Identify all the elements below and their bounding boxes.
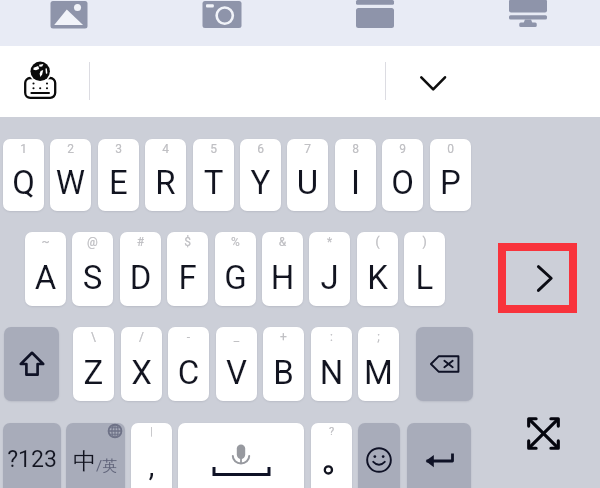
staticText: _: [216, 330, 257, 344]
button[interactable]: |: [131, 423, 172, 488]
button[interactable]: &: [262, 232, 303, 306]
staticText: /英: [96, 457, 118, 476]
staticText: ,: [131, 448, 172, 483]
button[interactable]: Expand keyboard: [521, 411, 566, 456]
button[interactable]: Screen mirror: [501, 0, 555, 46]
staticText: H: [262, 258, 303, 297]
button[interactable]: *: [309, 232, 350, 306]
button[interactable]: ?: [311, 423, 352, 488]
staticText: V: [216, 353, 257, 392]
staticText: X: [121, 353, 162, 392]
button[interactable]: Gallery: [42, 0, 96, 46]
staticText: 1: [3, 142, 44, 156]
staticText: 8: [335, 142, 376, 156]
button[interactable]: 5: [193, 139, 234, 211]
staticText: ~: [25, 235, 66, 249]
button[interactable]: Next: [506, 251, 569, 305]
staticText: K: [357, 258, 398, 297]
button[interactable]: 1: [3, 139, 44, 211]
staticText: P: [430, 163, 471, 202]
staticText: /: [121, 330, 162, 344]
button[interactable]: -: [168, 327, 209, 401]
button[interactable]: Emoji: [358, 423, 400, 488]
staticText: Z: [73, 353, 114, 392]
staticText: :: [311, 330, 352, 344]
staticText: \: [73, 330, 114, 344]
button[interactable]: _: [216, 327, 257, 401]
button[interactable]: \: [73, 327, 114, 401]
staticText: 3: [98, 142, 139, 156]
button[interactable]: 8: [335, 139, 376, 211]
staticText: R: [145, 163, 186, 202]
button[interactable]: :: [311, 327, 352, 401]
button[interactable]: 2: [50, 139, 91, 211]
staticText: C: [168, 353, 209, 392]
button[interactable]: Backspace: [416, 327, 473, 401]
button[interactable]: Enter: [407, 423, 471, 488]
staticText: 中: [73, 447, 96, 476]
staticText: A: [25, 258, 66, 297]
button[interactable]: 7: [287, 139, 328, 211]
staticText: E: [98, 163, 139, 202]
staticText: M: [358, 353, 399, 392]
staticText: +: [263, 330, 304, 344]
staticText: $: [167, 235, 208, 249]
staticText: 9: [382, 142, 423, 156]
staticText: ?: [311, 425, 352, 438]
staticText: Q: [3, 163, 44, 202]
staticText: ): [404, 235, 445, 249]
button[interactable]: 0: [430, 139, 471, 211]
button[interactable]: /: [121, 327, 162, 401]
staticText: ?123: [3, 446, 61, 473]
button[interactable]: Switch language: [12, 54, 68, 108]
staticText: |: [131, 426, 172, 438]
staticText: B: [263, 353, 304, 392]
button[interactable]: +: [263, 327, 304, 401]
staticText: &: [262, 235, 303, 249]
button[interactable]: Camera: [195, 0, 249, 46]
staticText: D: [120, 258, 161, 297]
button[interactable]: 9: [382, 139, 423, 211]
staticText: N: [311, 353, 352, 392]
button[interactable]: ): [404, 232, 445, 306]
staticText: @: [72, 235, 113, 249]
button[interactable]: 6: [240, 139, 281, 211]
staticText: S: [72, 258, 113, 297]
staticText: (: [357, 235, 398, 249]
staticText: G: [215, 258, 256, 297]
button[interactable]: Collapse toolbar: [409, 55, 457, 103]
staticText: 6: [240, 142, 281, 156]
button[interactable]: (: [357, 232, 398, 306]
staticText: W: [50, 163, 91, 202]
staticText: 0: [430, 142, 471, 156]
staticText: 5: [193, 142, 234, 156]
button[interactable]: Space: [178, 423, 304, 488]
button[interactable]: 4: [145, 139, 186, 211]
staticText: *: [309, 235, 350, 249]
button[interactable]: %: [215, 232, 256, 306]
staticText: J: [309, 258, 350, 297]
button[interactable]: #: [120, 232, 161, 306]
staticText: I: [335, 163, 376, 202]
staticText: O: [382, 163, 423, 202]
button[interactable]: Chinese English toggle: [66, 423, 125, 488]
staticText: L: [404, 258, 445, 297]
staticText: 4: [145, 142, 186, 156]
button[interactable]: 3: [98, 139, 139, 211]
button[interactable]: Shift: [4, 327, 59, 401]
button[interactable]: Clipboard: [348, 0, 402, 46]
staticText: %: [215, 235, 256, 249]
staticText: Y: [240, 163, 281, 202]
button[interactable]: $: [167, 232, 208, 306]
button[interactable]: @: [72, 232, 113, 306]
button[interactable]: ~: [25, 232, 66, 306]
staticText: 7: [287, 142, 328, 156]
staticText: T: [193, 163, 234, 202]
staticText: #: [120, 235, 161, 249]
button[interactable]: ;: [358, 327, 399, 401]
staticText: ;: [358, 330, 399, 344]
button[interactable]: ?123: [3, 423, 61, 488]
staticText: -: [168, 330, 209, 344]
staticText: 2: [50, 142, 91, 156]
staticText: U: [287, 163, 328, 202]
